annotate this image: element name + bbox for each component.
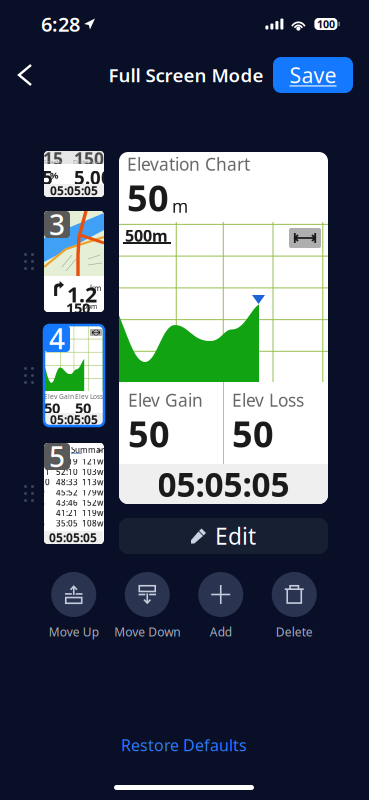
staticText: 5 <box>42 165 53 190</box>
button[interactable]: Restore Defaults <box>94 730 274 760</box>
button[interactable]: 15 <box>24 151 104 197</box>
button[interactable]: Save <box>273 57 353 93</box>
staticText: m <box>172 194 188 217</box>
staticText: 6:28 <box>41 11 80 37</box>
staticText: 103w <box>82 466 103 477</box>
staticText: Grade <box>42 158 62 167</box>
staticText: Edit <box>215 521 256 551</box>
staticText: Add <box>210 624 232 640</box>
staticText: 9 <box>40 487 45 498</box>
button[interactable]: 1.2 <box>24 211 104 312</box>
button[interactable]: Move Up <box>37 572 110 640</box>
staticText: 50 <box>75 398 91 417</box>
staticText: 4 <box>49 320 65 357</box>
staticText: 50 <box>232 410 274 457</box>
staticText: 150 <box>66 298 90 317</box>
staticText: 500m <box>125 225 168 246</box>
staticText: Save <box>289 61 336 89</box>
staticText: 43:46 <box>56 497 78 508</box>
button[interactable]: Move Down <box>110 572 184 640</box>
staticText: 05:05:05 <box>49 529 97 545</box>
staticText: 119w <box>82 508 103 518</box>
staticText: 05:05:05 <box>157 462 289 506</box>
staticText: km <box>90 283 101 294</box>
staticText: Elevation Chart <box>127 153 250 176</box>
staticText: 7 <box>40 508 45 518</box>
staticText: > <box>97 444 102 456</box>
staticText: 45:52 <box>56 487 78 498</box>
staticText: bpm <box>83 302 97 311</box>
staticText: Elev Gain <box>44 392 74 401</box>
staticText: 6 <box>40 518 45 529</box>
staticText: 108w <box>82 518 103 529</box>
staticText: 54:19 <box>56 456 78 467</box>
staticText: Summary <box>71 444 108 455</box>
staticText: Distance <box>73 158 100 167</box>
staticText: 50 <box>44 398 60 417</box>
staticText: 05:05:05 <box>50 182 98 198</box>
staticText: 05:05:05 <box>50 411 98 427</box>
staticText: 179w <box>82 487 103 498</box>
staticText: Full Screen Mode <box>108 63 263 87</box>
staticText: Elev Gain <box>128 389 203 412</box>
staticText: 12 <box>40 456 50 467</box>
staticText: 11 <box>40 466 50 477</box>
staticText: 8 <box>40 497 45 508</box>
staticText: 100 <box>317 17 335 31</box>
staticText: Elev Loss <box>75 392 103 401</box>
staticText: 150 <box>74 147 104 170</box>
staticText: 152w <box>82 497 103 508</box>
staticText: % <box>50 169 58 181</box>
button[interactable]: Edit <box>119 518 328 554</box>
staticText: 35:05 <box>56 518 78 529</box>
staticText: Delete <box>276 624 313 640</box>
staticText: 5.00 <box>74 165 112 190</box>
staticText: Move Down <box>114 624 180 640</box>
button[interactable]: Delete <box>257 572 331 640</box>
staticText: 15 <box>43 147 63 170</box>
button[interactable]: Summary <box>24 443 104 544</box>
staticText: 3 <box>49 206 65 243</box>
staticText: Move Up <box>49 624 99 640</box>
button[interactable]: Add <box>184 572 257 640</box>
staticText: 5 <box>49 438 65 475</box>
staticText: 41:21 <box>56 508 78 518</box>
staticText: 50 <box>128 410 170 457</box>
staticText: 52:10 <box>56 466 78 477</box>
staticText: 50 <box>127 174 169 221</box>
staticText: Restore Defaults <box>121 734 247 756</box>
staticText: Elev Loss <box>232 389 304 412</box>
button[interactable]: Back <box>0 56 45 94</box>
staticText: 48:33 <box>56 477 78 487</box>
staticText: 1.2 <box>67 280 97 308</box>
staticText: 10 <box>40 477 50 487</box>
button[interactable]: Elev Gain <box>24 325 104 426</box>
staticText: 121w <box>82 456 103 467</box>
staticText: 113w <box>82 477 103 487</box>
